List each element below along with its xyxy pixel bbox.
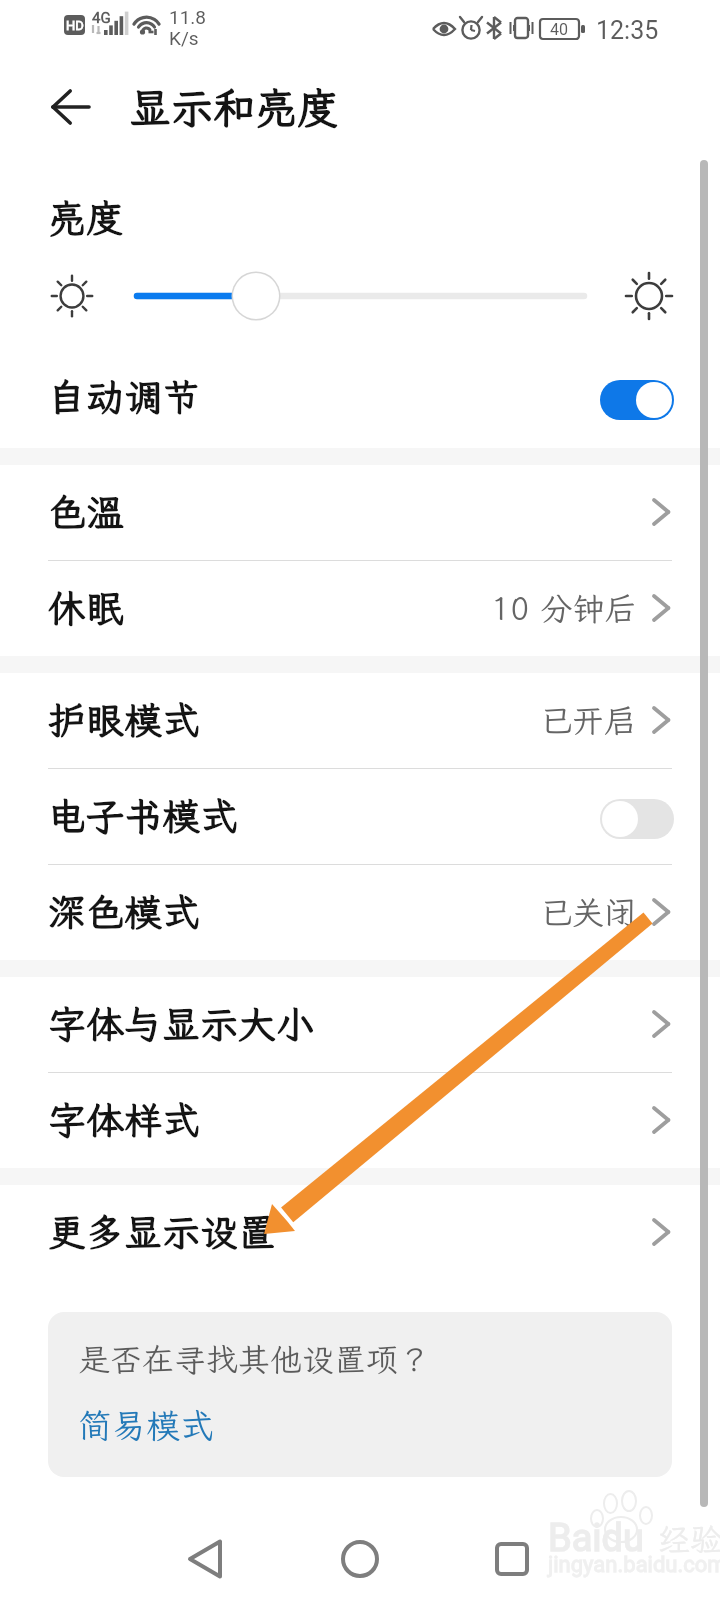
staticText: K/s <box>169 27 199 49</box>
staticText: 字体样式 <box>48 1095 201 1145</box>
button[interactable]: 电子书模式 <box>600 799 674 839</box>
button[interactable]: Back <box>43 79 99 135</box>
staticText: 40 <box>550 20 568 39</box>
staticText: 亮度 <box>48 193 125 243</box>
button[interactable]: Recents <box>472 1519 552 1599</box>
button[interactable]: 电子书模式 <box>0 768 720 864</box>
staticText: HD <box>66 18 84 33</box>
staticText: 更多显示设置 <box>48 1207 277 1257</box>
button[interactable]: 休眠 <box>0 560 720 656</box>
button[interactable]: Back <box>166 1519 246 1599</box>
button[interactable]: 字体样式 <box>0 1072 720 1168</box>
button[interactable]: 字体与显示大小 <box>0 976 720 1072</box>
staticText: 已开启 <box>540 699 637 741</box>
staticText: 色温 <box>48 487 125 537</box>
staticText: 深色模式 <box>48 887 201 937</box>
staticText: 4G <box>92 9 111 27</box>
button[interactable]: Home <box>320 1519 400 1599</box>
button[interactable]: 更多显示设置 <box>0 1184 720 1280</box>
staticText: 显示和亮度 <box>129 80 340 135</box>
staticText: 10 分钟后 <box>491 587 637 629</box>
staticText: 11.8 <box>169 6 207 28</box>
staticText: jingyan.baidu.com <box>548 1552 720 1578</box>
staticText: 自动调节 <box>48 372 201 422</box>
button[interactable]: 自动调节 <box>600 380 674 420</box>
staticText: 经验 <box>658 1518 720 1560</box>
button[interactable]: 色温 <box>0 464 720 560</box>
button[interactable]: 自动调节 <box>0 349 720 445</box>
button[interactable]: 深色模式 <box>0 864 720 960</box>
staticText: 12:35 <box>596 16 659 45</box>
staticText: 是否在寻找其他设置项？ <box>78 1338 431 1380</box>
staticText: 休眠 <box>48 583 125 633</box>
staticText: 护眼模式 <box>48 695 201 745</box>
staticText: 已关闭 <box>540 891 637 933</box>
button[interactable]: 简易模式 <box>78 1403 214 1448</box>
staticText: 电子书模式 <box>48 791 239 841</box>
staticText: 字体与显示大小 <box>48 999 315 1049</box>
button[interactable]: 是否在寻找其他设置项？ <box>48 1312 672 1477</box>
staticText: Baidu <box>548 1516 644 1561</box>
button[interactable]: 护眼模式 <box>0 672 720 768</box>
